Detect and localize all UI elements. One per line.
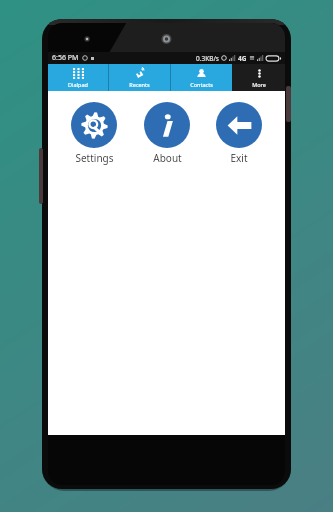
button[interactable]: More [232,64,285,91]
staticText: More [252,81,266,88]
staticText: 4G [238,54,247,63]
staticText: Exit [230,151,248,165]
staticText: Contacts [190,81,213,88]
staticText: Recents [129,81,150,88]
button[interactable]: Recents [109,64,170,91]
button[interactable]: Dialpad [48,64,108,91]
button[interactable]: Exit [213,102,265,165]
button[interactable]: About [141,102,193,165]
button[interactable]: Contacts [171,64,232,91]
staticText: 0.3KB/s [196,54,219,63]
button[interactable]: Settings [68,102,120,165]
staticText: Settings [75,151,114,165]
staticText: 6:56 PM [52,53,79,63]
staticText: About [153,151,182,165]
staticText: Dialpad [68,81,88,88]
